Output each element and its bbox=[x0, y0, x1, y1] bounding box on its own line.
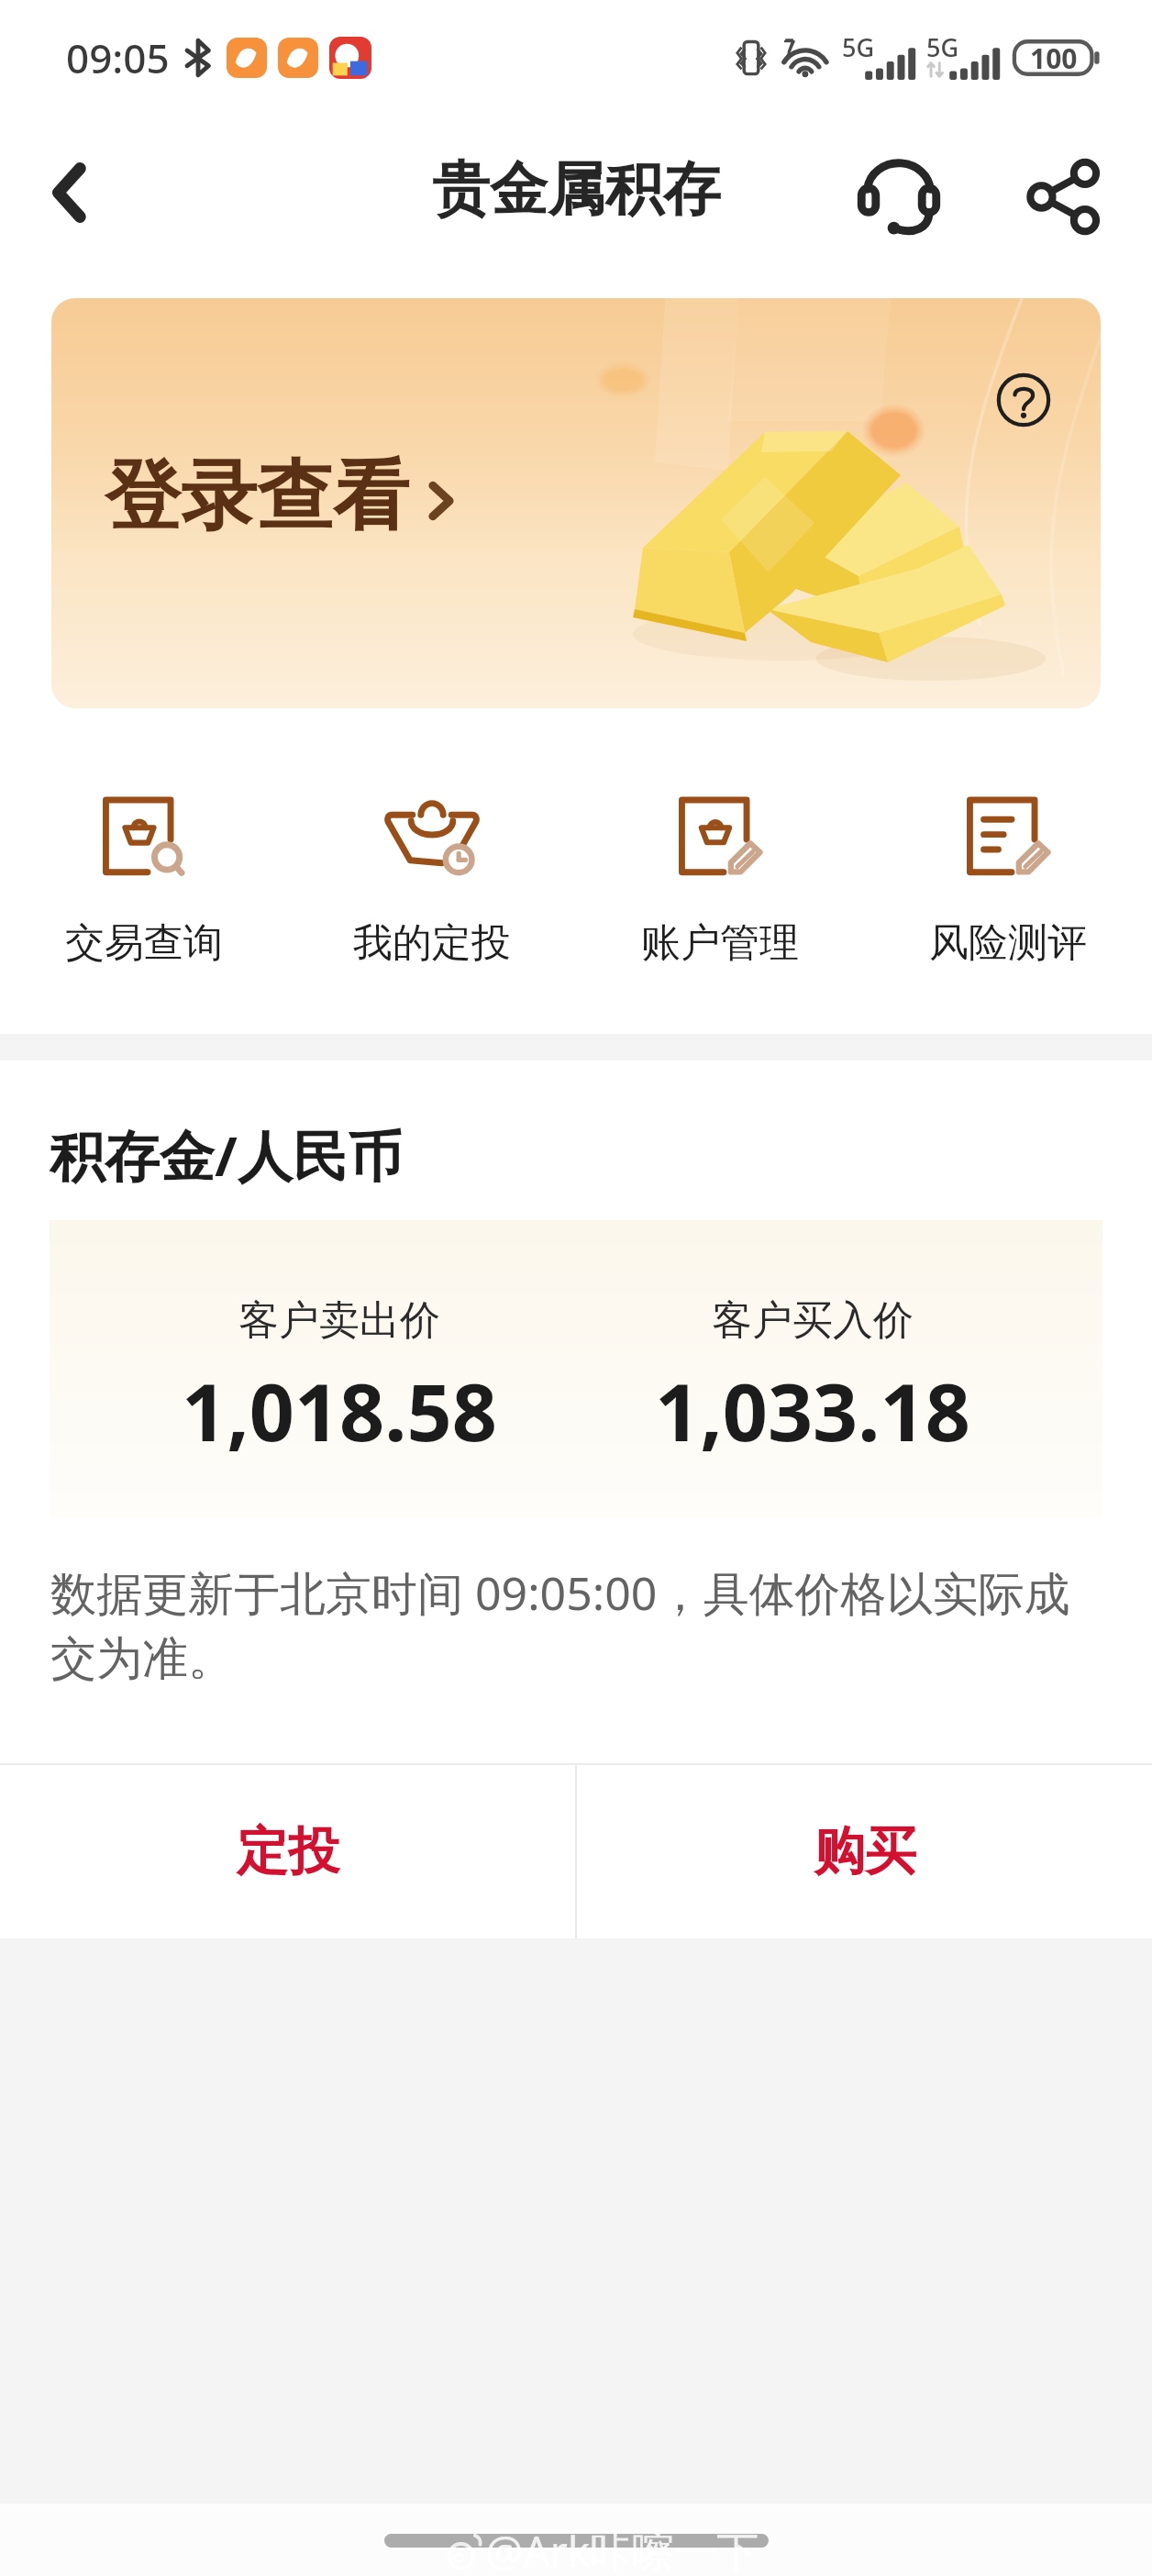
button[interactable]: 购买 bbox=[577, 1765, 1152, 1938]
button[interactable]: 定投 bbox=[0, 1765, 575, 1938]
button[interactable]: 我的定投 bbox=[288, 799, 576, 968]
staticText: 购买 bbox=[814, 1819, 916, 1884]
staticText: 定投 bbox=[237, 1819, 339, 1884]
button[interactable]: 登录查看 bbox=[51, 298, 1101, 708]
staticText: 风险测评 bbox=[929, 918, 1087, 968]
staticText: 100 bbox=[1030, 39, 1078, 77]
button[interactable]: Back bbox=[23, 147, 115, 239]
button[interactable]: Help bbox=[993, 370, 1054, 430]
button[interactable]: Customer service bbox=[853, 150, 945, 241]
staticText: @Ark咔嚓一下 bbox=[485, 2522, 759, 2576]
staticText: 1,018.58 bbox=[182, 1357, 497, 1464]
staticText: 我的定投 bbox=[353, 918, 511, 968]
staticText: 5G bbox=[842, 30, 875, 64]
staticText: 积存金/人民币 bbox=[50, 1117, 403, 1193]
staticText: 7 bbox=[783, 32, 796, 62]
staticText: 1,033.18 bbox=[655, 1357, 970, 1464]
staticText: 数据更新于北京时间 09:05:00，具体价格以实际成交为准。 bbox=[50, 1561, 1103, 1688]
staticText: 账户管理 bbox=[641, 918, 799, 968]
button[interactable]: 账户管理 bbox=[576, 799, 864, 968]
staticText: 客户买入价 bbox=[712, 1295, 914, 1346]
staticText: 客户卖出价 bbox=[238, 1295, 440, 1346]
button[interactable]: 交易查询 bbox=[0, 799, 288, 968]
staticText: 5G bbox=[926, 30, 959, 64]
button[interactable]: Share bbox=[1017, 150, 1109, 242]
staticText: 交易查询 bbox=[65, 918, 223, 968]
staticText: 登录查看 bbox=[105, 449, 409, 545]
button[interactable]: 风险测评 bbox=[864, 799, 1152, 968]
staticText: 贵金属积存 bbox=[432, 153, 721, 226]
staticText: 09:05 bbox=[66, 30, 170, 85]
